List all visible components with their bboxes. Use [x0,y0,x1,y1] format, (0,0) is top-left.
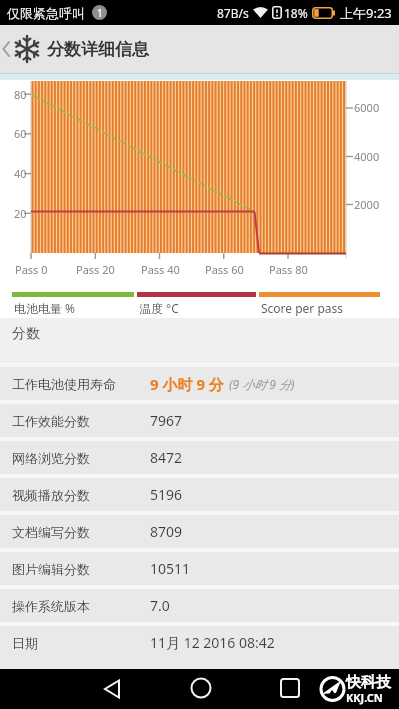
button[interactable] [275,674,305,704]
staticText: 2000 [354,197,380,212]
button[interactable]: 日期 [0,626,399,659]
staticText: Pass 40 [141,262,180,277]
button[interactable]: 网络浏览分数 [0,441,399,474]
staticText: 8472 [150,448,183,467]
staticText: 5196 [150,485,183,504]
button[interactable] [186,674,216,704]
staticText: 操作系统版本 [12,598,90,614]
staticText: 87B/s [217,5,249,21]
button[interactable]: 视频播放分数 [0,478,399,511]
button[interactable]: 工作电池使用寿命 [0,367,399,400]
staticText: 7967 [150,411,183,430]
staticText: 分数详细信息 [47,39,149,60]
staticText: 电池电量 % [14,300,76,316]
button[interactable]: 文档编写分数 [0,515,399,548]
button[interactable] [98,674,128,704]
staticText: 60 [14,126,27,141]
button[interactable]: 分数详细信息 [0,25,399,73]
staticText: 上午9:23 [340,4,392,22]
staticText: 1 [97,6,103,20]
staticText: 日期 [12,635,38,651]
staticText: KKJ.CN [346,690,383,705]
staticText: 9 小时 9 分 [150,374,224,394]
button[interactable]: 工作效能分数 [0,404,399,437]
staticText: 仅限紧急呼叫 [7,5,85,21]
staticText: Score per pass [261,300,344,316]
staticText: Pass 20 [76,262,115,277]
staticText: 20 [14,206,27,221]
staticText: Pass 80 [269,262,308,277]
staticText: 10511 [150,559,191,578]
staticText: 6000 [354,100,380,115]
staticText: 40 [14,166,27,181]
staticText: 图片编辑分数 [12,561,90,577]
button[interactable]: 图片编辑分数 [0,552,399,585]
staticText: 8709 [150,522,183,541]
staticText: 7.0 [150,596,170,615]
staticText: (9 小时 9 分) [229,376,295,392]
staticText: 快科技 [346,673,391,692]
staticText: 18% [284,5,308,21]
staticText: 80 [14,87,27,102]
staticText: 文档编写分数 [12,524,90,540]
staticText: Pass 60 [205,262,244,277]
staticText: 4000 [354,149,380,164]
button[interactable]: 操作系统版本 [0,589,399,622]
staticText: 温度 °C [139,300,179,316]
staticText: 11月 12 2016 08:42 [150,633,275,652]
staticText: 视频播放分数 [12,487,90,503]
staticText: 网络浏览分数 [12,450,90,466]
staticText: 工作效能分数 [12,413,90,429]
staticText: 工作电池使用寿命 [12,376,116,392]
staticText: 分数 [12,325,40,343]
staticText: Pass 0 [15,262,48,277]
